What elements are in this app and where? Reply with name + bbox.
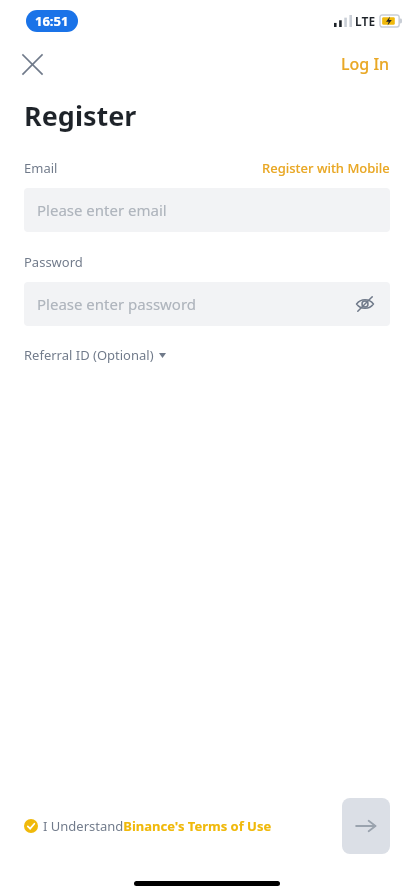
staticText: Please enter password	[37, 294, 197, 314]
button[interactable]: Referral ID (Optional)	[24, 346, 166, 364]
staticText: Password	[24, 253, 83, 271]
button[interactable]: Register with Mobile	[262, 159, 390, 177]
staticText: I UnderstandBinance's Terms of Use	[43, 817, 272, 835]
button[interactable]: Log In	[317, 45, 414, 83]
staticText: Register	[24, 97, 137, 134]
button[interactable]: Continue	[342, 798, 390, 854]
button[interactable]: Close	[12, 44, 52, 84]
button[interactable]: I UnderstandBinance's Terms of Use	[24, 817, 272, 835]
staticText: Referral ID (Optional)	[24, 346, 154, 364]
staticText: Log In	[341, 53, 390, 75]
button[interactable]: Show password	[348, 287, 382, 321]
staticText: LTE	[355, 13, 376, 29]
button[interactable]: Please enter email	[24, 188, 390, 232]
staticText: Please enter email	[37, 200, 167, 220]
staticText: 16:51	[35, 12, 69, 30]
staticText: Email	[24, 159, 58, 177]
staticText: Register with Mobile	[262, 159, 390, 177]
button[interactable]: Please enter password	[24, 282, 390, 326]
